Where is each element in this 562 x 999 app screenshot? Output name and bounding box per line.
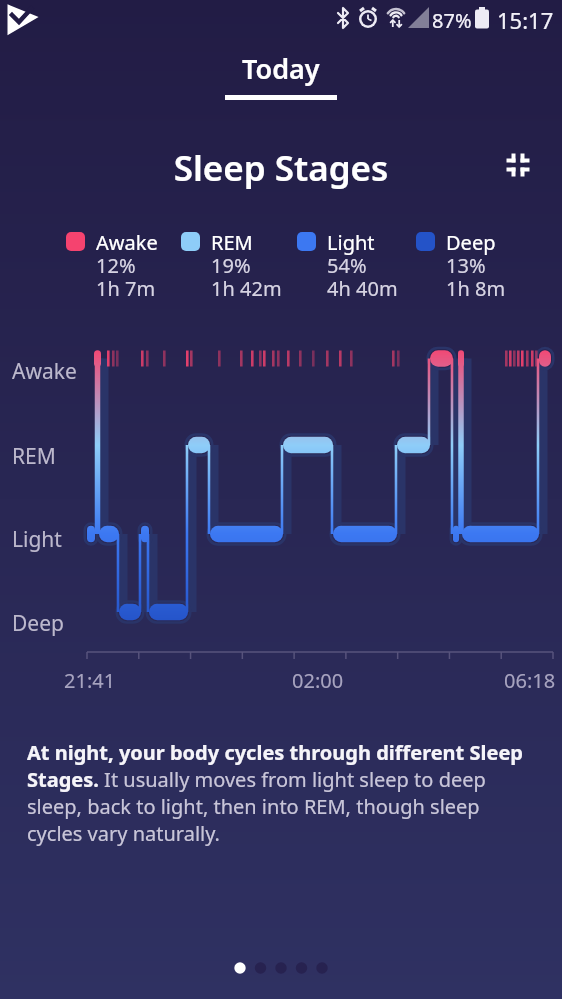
staticText: 1h 8m <box>446 275 506 302</box>
staticText: 54% <box>327 252 367 279</box>
staticText: 1h 7m <box>96 275 156 302</box>
staticText: Light <box>327 229 375 256</box>
staticText: REM <box>211 229 253 256</box>
button[interactable]: Today <box>215 40 347 96</box>
staticText: 15:17 <box>497 5 554 35</box>
staticText: 4h 40m <box>327 275 398 302</box>
staticText: 12% <box>96 252 136 279</box>
staticText: 02:00 <box>292 667 344 694</box>
staticText: Deep <box>446 229 496 256</box>
staticText: Awake <box>12 357 77 386</box>
staticText: 87% <box>432 7 472 34</box>
staticText: Deep <box>12 609 64 638</box>
staticText: Sleep Stages <box>0 144 562 192</box>
staticText: At night, your body cycles through diffe… <box>27 739 535 847</box>
staticText: 19% <box>211 252 251 279</box>
button[interactable] <box>498 145 538 185</box>
staticText: Light <box>12 525 62 554</box>
staticText: 1h 42m <box>211 275 282 302</box>
staticText: Today <box>242 50 320 87</box>
staticText: 13% <box>446 252 486 279</box>
staticText: Awake <box>96 229 158 256</box>
staticText: REM <box>12 442 56 471</box>
staticText: 21:41 <box>64 667 116 694</box>
staticText: 06:18 <box>504 667 556 694</box>
